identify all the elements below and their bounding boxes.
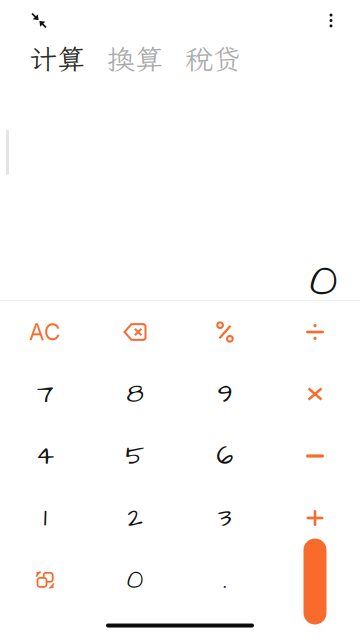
staticText: 换算 [107,41,163,77]
button[interactable]: 2 [90,487,180,549]
button[interactable]: 税贷 [180,37,246,81]
button[interactable]: AC [0,301,90,363]
button[interactable]: . [180,549,270,611]
button[interactable]: Subtract [270,425,360,487]
button[interactable]: 换算 [102,37,168,81]
button[interactable]: Backspace [90,301,180,363]
button[interactable]: 6 [180,425,270,487]
button[interactable]: Unit conversion [0,549,90,611]
button[interactable]: 0 [90,549,180,611]
button[interactable]: Equals [270,549,360,611]
button[interactable]: More options [314,3,348,37]
button[interactable]: 计算 [24,37,90,81]
button[interactable]: Multiply [270,363,360,425]
button[interactable]: 3 [180,487,270,549]
staticText: 2 [127,499,142,537]
staticText: 0 [309,250,338,313]
staticText: . [223,561,227,599]
button[interactable]: 7 [0,363,90,425]
button[interactable]: 8 [90,363,180,425]
staticText: 3 [218,499,232,537]
button[interactable]: 9 [180,363,270,425]
staticText: 8 [126,375,143,413]
button[interactable]: Percent [180,301,270,363]
staticText: 1 [43,499,46,537]
button[interactable]: 1 [0,487,90,549]
staticText: 7 [37,375,53,413]
staticText: 税贷 [185,41,241,77]
staticText: 6 [216,437,233,475]
button[interactable]: 5 [90,425,180,487]
button[interactable]: Divide [270,301,360,363]
staticText: AC [29,318,61,346]
staticText: 计算 [29,41,85,77]
staticText: 4 [36,437,54,475]
button[interactable]: Add [270,487,360,549]
button[interactable]: 4 [0,425,90,487]
staticText: 0 [126,561,143,599]
staticText: 9 [217,375,232,413]
button[interactable]: Collapse [22,3,56,37]
staticText: 5 [125,437,144,475]
